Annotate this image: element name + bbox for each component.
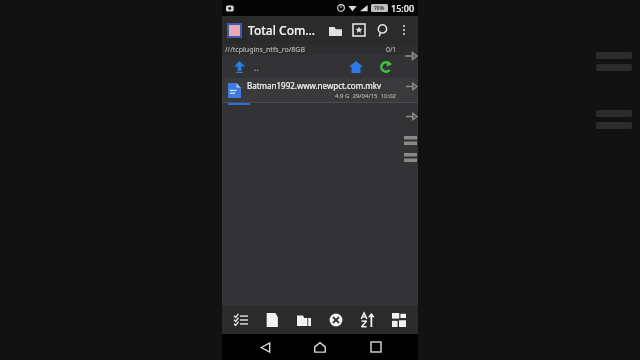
staticText: Total Com…: [248, 22, 316, 38]
button[interactable]: Select: [228, 307, 254, 333]
button[interactable]: Recents: [363, 334, 389, 360]
button[interactable]: Search: [371, 18, 395, 42]
button[interactable]: Delete: [323, 307, 349, 333]
button[interactable]: Refresh: [376, 57, 396, 77]
button[interactable]: Batman1992.www.newpct.com.mkv: [222, 78, 418, 102]
button[interactable]: Sort: [355, 307, 381, 333]
button[interactable]: Back: [252, 334, 278, 360]
button[interactable]: Up one level: [230, 58, 248, 76]
staticText: 4.9 G 29/04/15 10:02: [247, 92, 396, 100]
button[interactable]: New file: [259, 307, 285, 333]
button[interactable]: Folders: [323, 18, 347, 42]
staticText: Batman1992.www.newpct.com.mkv: [247, 80, 382, 91]
staticText: 0/1: [386, 45, 397, 55]
staticText: 15:00: [391, 2, 415, 14]
button[interactable]: Home: [346, 57, 366, 77]
button[interactable]: More options: [395, 21, 413, 39]
button[interactable]: Home: [307, 334, 333, 360]
button[interactable]: Bookmarks: [347, 18, 371, 42]
staticText: ///tcplugins_ntfs_ro/8GB: [225, 45, 305, 55]
staticText: ..: [254, 61, 259, 73]
button[interactable]: New folder: [291, 307, 317, 333]
button[interactable]: Properties: [386, 307, 412, 333]
staticText: 70%: [374, 5, 385, 12]
